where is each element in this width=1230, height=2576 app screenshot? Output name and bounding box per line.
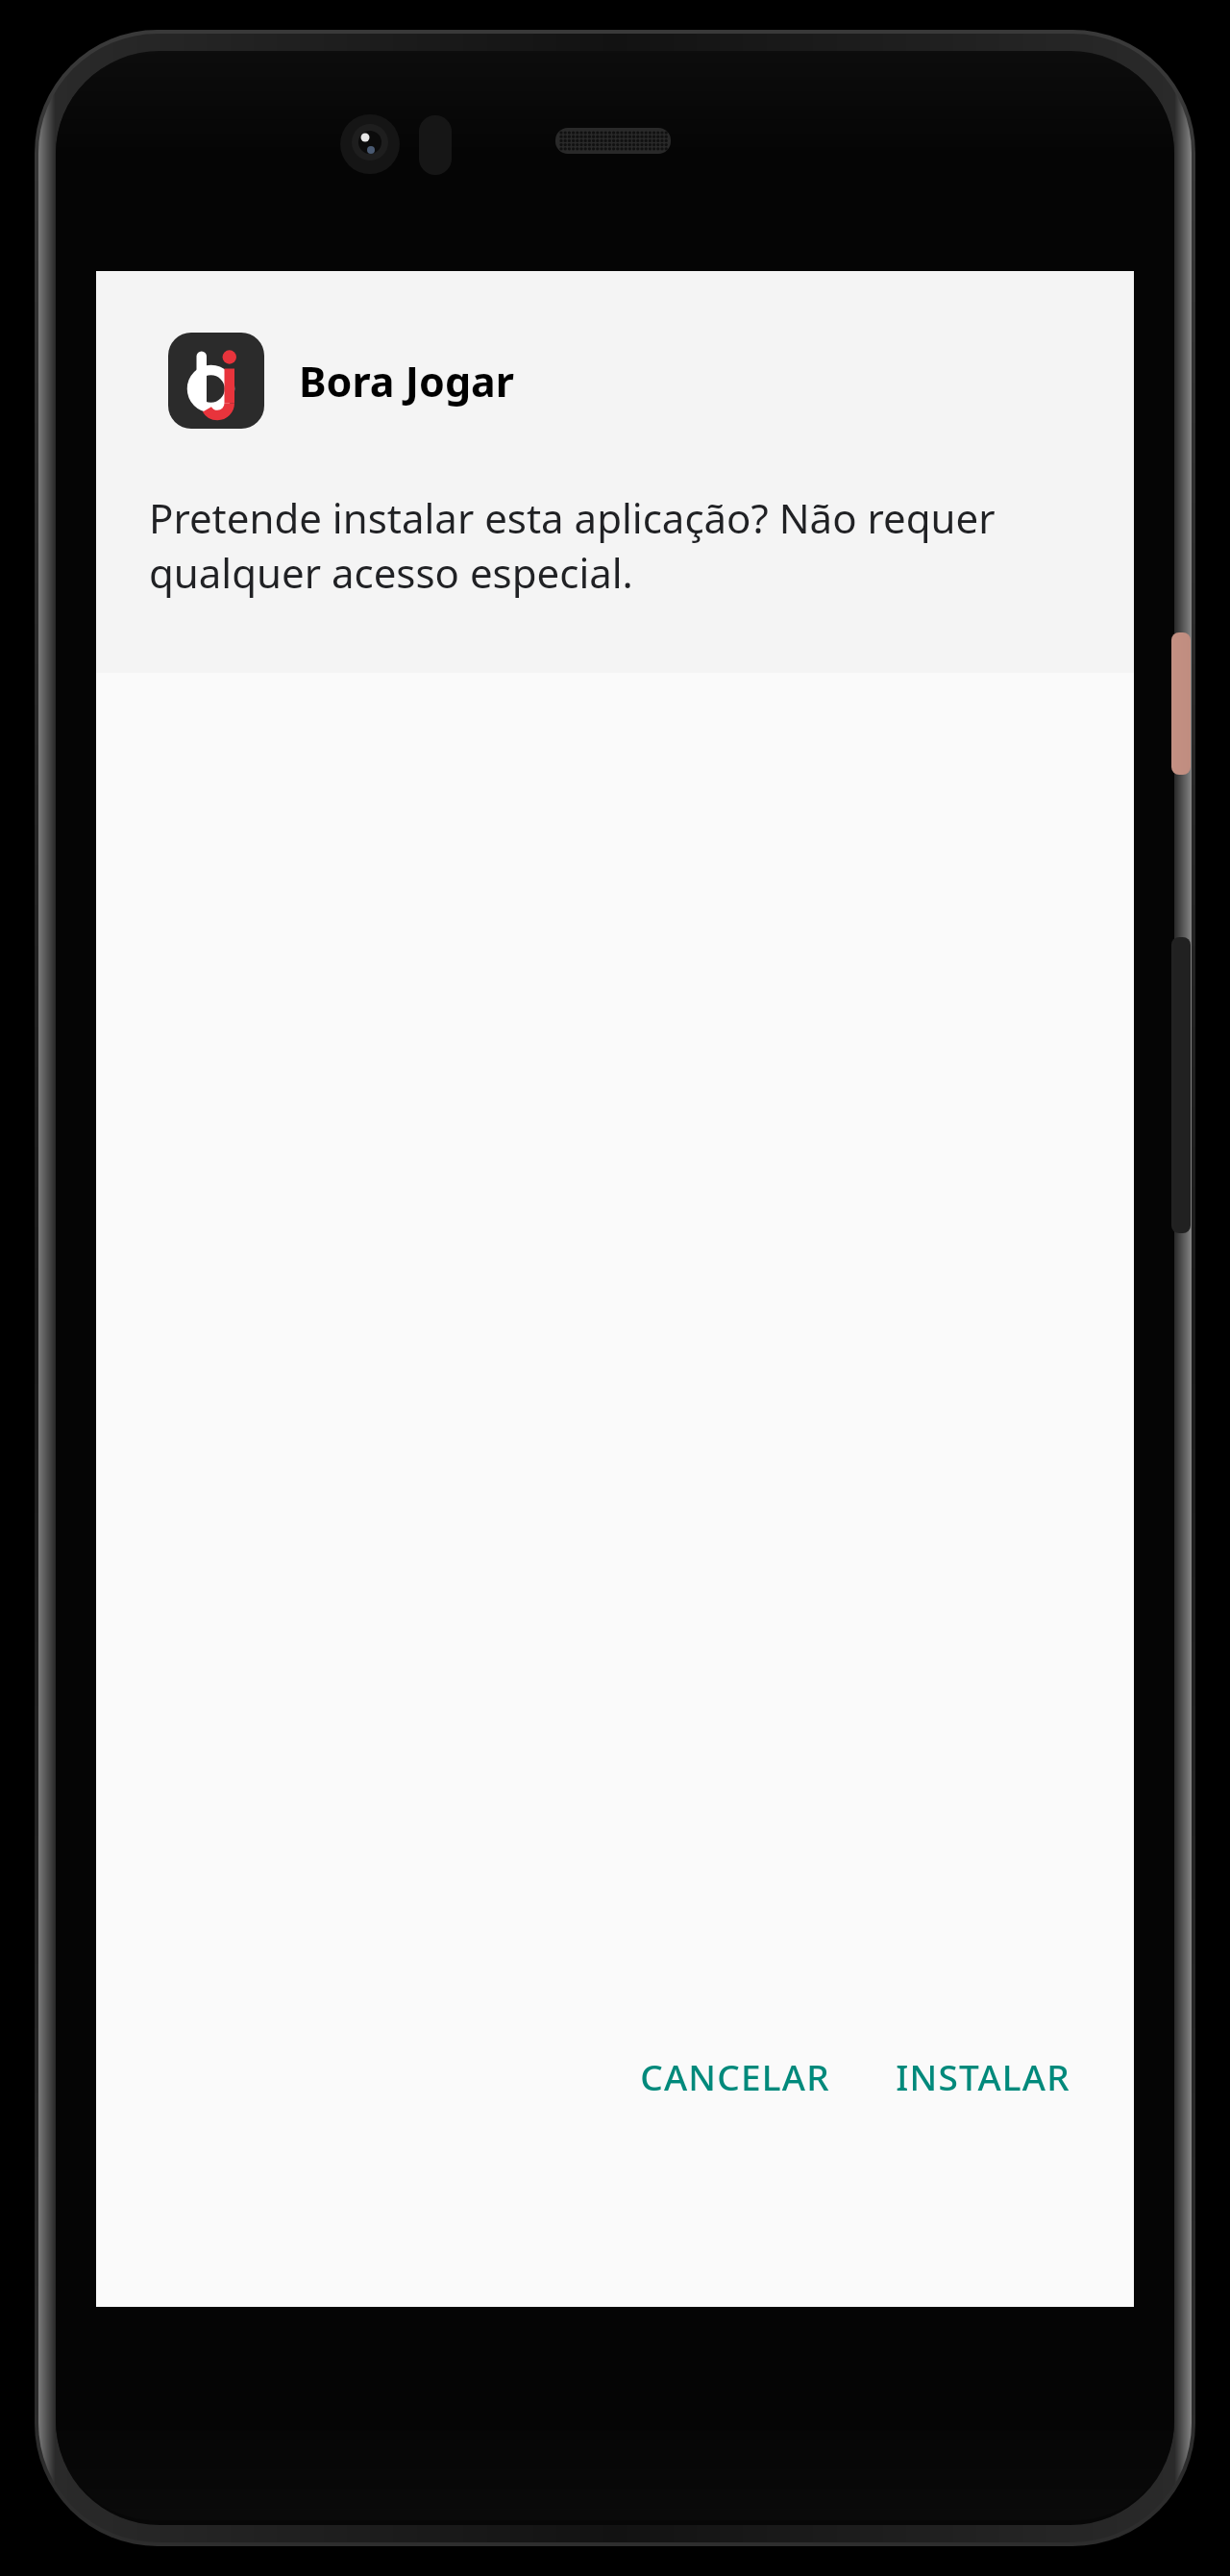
staticText: CANCELAR xyxy=(640,2052,830,2100)
staticText: Pretende instalar esta aplicação? Não re… xyxy=(149,490,1084,600)
staticText: Bora Jogar xyxy=(299,353,515,409)
staticText: INSTALAR xyxy=(896,2052,1070,2100)
button[interactable]: INSTALAR xyxy=(871,2033,1095,2119)
button[interactable]: CANCELAR xyxy=(615,2033,855,2119)
